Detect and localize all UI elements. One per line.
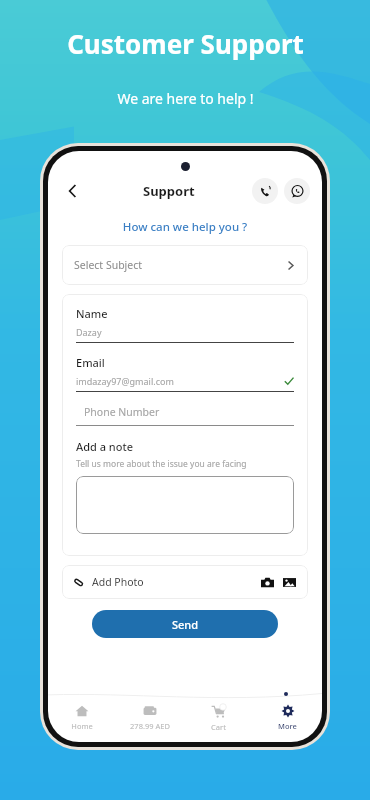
staticText: Add a note	[76, 439, 134, 454]
staticText: Cart	[211, 722, 226, 732]
staticText: We are here to help !	[117, 89, 254, 108]
staticText: Select Subject	[74, 258, 143, 272]
staticText: Dazay	[76, 326, 102, 338]
staticText: 278.99 AED	[130, 721, 170, 731]
button[interactable]: Phone Number	[76, 405, 294, 426]
button[interactable]: 278.99 AED	[116, 702, 184, 733]
button[interactable]: Back	[60, 178, 86, 204]
staticText: Home	[71, 721, 93, 731]
staticText: imdazay97@gmail.com	[76, 375, 174, 387]
button[interactable]: More	[253, 702, 322, 733]
button[interactable]: Call	[252, 178, 278, 204]
button[interactable]: WhatsApp	[284, 178, 310, 204]
staticText: Phone Number	[84, 405, 160, 419]
staticText: Email	[76, 355, 105, 370]
button[interactable]: Take photo	[260, 575, 275, 590]
button[interactable]: Email	[76, 355, 294, 392]
staticText: Tell us more about the issue you are fac…	[76, 458, 247, 470]
staticText: Customer Support	[67, 26, 304, 61]
staticText: Send	[172, 617, 199, 632]
staticText: Add Photo	[92, 575, 144, 589]
staticText: How can we help you ?	[48, 219, 322, 235]
button[interactable]: Send	[92, 610, 278, 638]
button[interactable]: Select Subject	[62, 245, 308, 285]
staticText: More	[278, 721, 297, 731]
staticText: Name	[76, 306, 108, 321]
button[interactable]: Home	[48, 702, 116, 733]
button[interactable]: Name	[76, 306, 294, 343]
button[interactable]: Choose from gallery	[282, 575, 297, 590]
button[interactable]	[76, 476, 294, 534]
staticText: Support	[143, 182, 195, 200]
button[interactable]: Cart	[184, 702, 253, 734]
button[interactable]: Add Photo	[62, 565, 308, 599]
